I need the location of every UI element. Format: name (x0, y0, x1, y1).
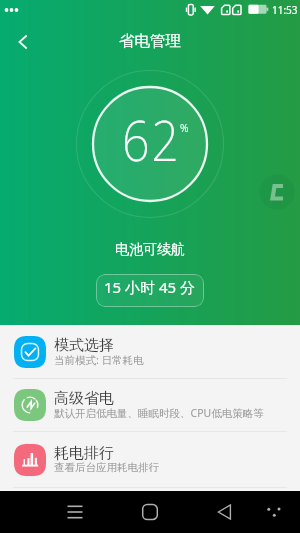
staticText: 15 小时 45 分 (104, 277, 196, 297)
button[interactable]: 高级省电 (0, 379, 300, 431)
staticText: 62 (122, 102, 181, 177)
staticText: 默认开启低电量、睡眠时段、CPU低电策略等 (54, 406, 264, 420)
staticText: 高级省电 (54, 389, 114, 408)
staticText: 模式选择 (54, 336, 114, 355)
staticText: 查看后台应用耗电排行 (54, 461, 159, 474)
staticText: 11:53 (272, 3, 298, 17)
button[interactable]: 模式选择 (0, 325, 300, 378)
staticText: 当前模式: 日常耗电 (54, 353, 144, 367)
staticText: 省电管理 (119, 31, 181, 51)
button[interactable]: Back (3, 22, 43, 62)
button[interactable]: 耗电排行 (0, 432, 300, 487)
button[interactable]: Recent apps (54, 491, 96, 533)
button[interactable]: Home (129, 491, 171, 533)
staticText: 耗电排行 (54, 444, 114, 463)
button[interactable]: Back (204, 491, 246, 533)
button[interactable]: 15 小时 45 分 (96, 274, 204, 307)
button[interactable]: Hide navigation bar (253, 491, 295, 533)
staticText: % (180, 121, 189, 135)
staticText: 电池可续航 (115, 241, 185, 259)
